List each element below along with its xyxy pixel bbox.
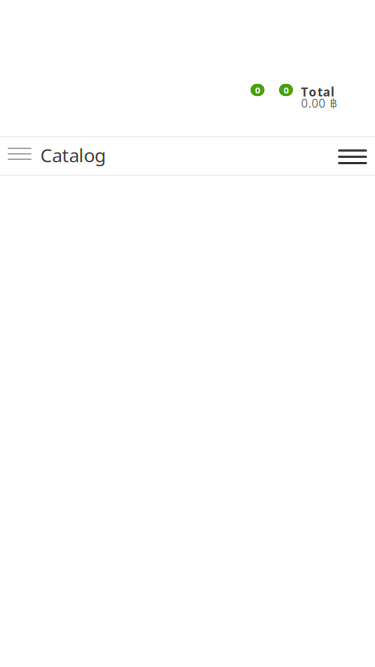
staticText: t [317,84,322,100]
staticText: o [309,84,317,100]
staticText: a [323,84,330,100]
staticText: 0 [283,84,288,96]
button[interactable]: Catalog [40,135,106,175]
button[interactable]: Wish list, 0 items [279,84,293,96]
button[interactable]: Sort and filter [334,137,371,177]
staticText: T [301,84,308,100]
button[interactable]: Compare list, 0 items [250,84,264,96]
staticText: 0 [301,95,308,111]
staticText: ฿ [330,96,338,110]
staticText: l [331,84,335,100]
staticText: 0 [319,95,326,111]
button[interactable]: Open side menu [2,134,38,174]
staticText: . [308,95,311,111]
staticText: 0 [311,95,318,111]
staticText: 0 [255,84,260,96]
button[interactable]: T [301,85,338,109]
staticText: Catalog [40,143,106,167]
